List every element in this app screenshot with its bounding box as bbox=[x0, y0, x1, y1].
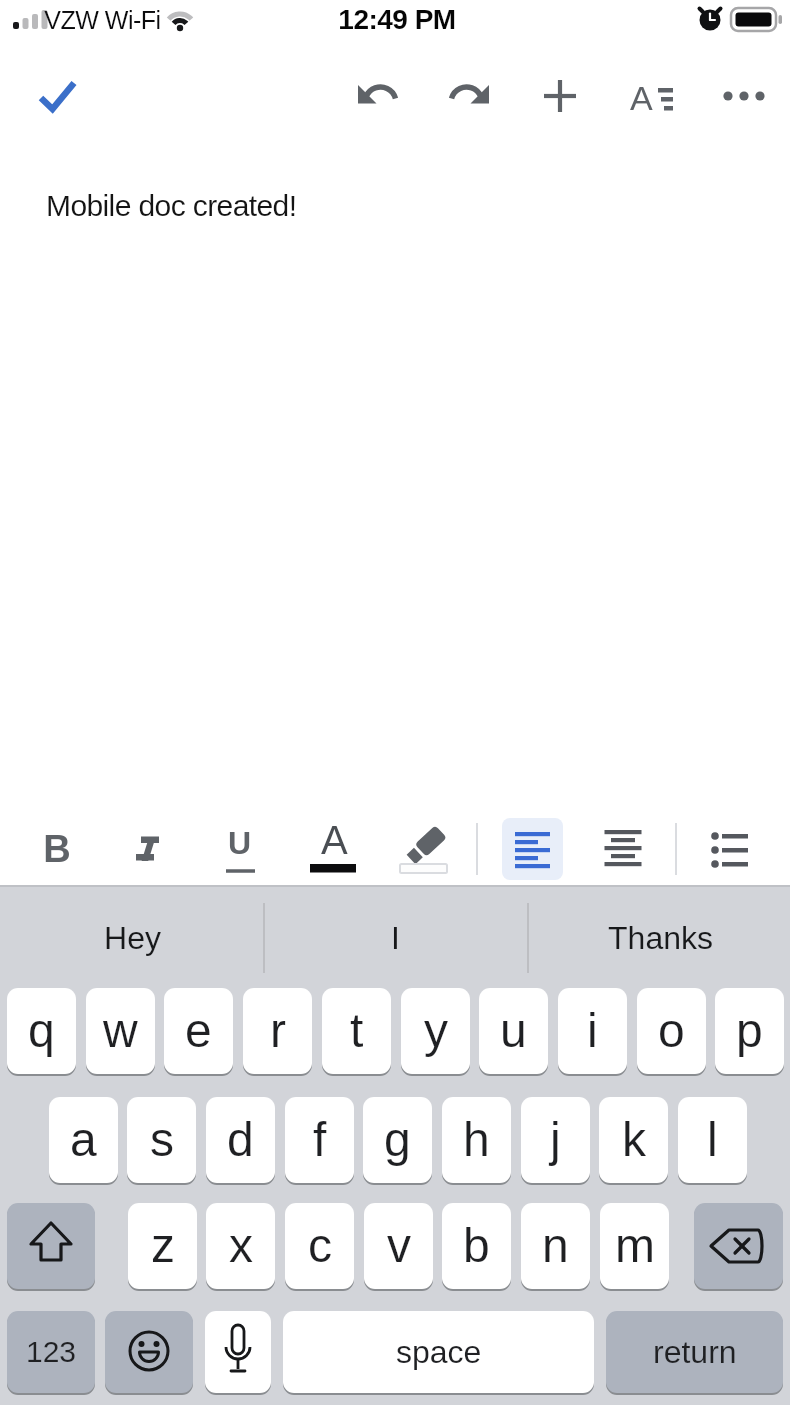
staticText: v bbox=[387, 1219, 411, 1273]
staticText: a bbox=[70, 1113, 97, 1167]
staticText: 123 bbox=[26, 1335, 77, 1369]
staticText: A bbox=[630, 79, 653, 117]
button[interactable]: z bbox=[128, 1203, 197, 1289]
staticText: space bbox=[396, 1334, 482, 1370]
button[interactable]: h bbox=[442, 1097, 511, 1183]
staticText: c bbox=[308, 1219, 332, 1273]
staticText: q bbox=[28, 1004, 55, 1058]
button[interactable]: f bbox=[285, 1097, 354, 1183]
staticText: Mobile doc created! bbox=[46, 189, 297, 223]
staticText: return bbox=[653, 1334, 737, 1370]
button[interactable]: U bbox=[212, 821, 268, 877]
staticText: z bbox=[151, 1219, 175, 1273]
button[interactable]: m bbox=[600, 1203, 669, 1289]
button[interactable] bbox=[354, 72, 402, 120]
staticText: n bbox=[542, 1219, 569, 1273]
staticText: U bbox=[228, 825, 252, 861]
button[interactable]: A bbox=[622, 72, 678, 120]
button[interactable]: x bbox=[206, 1203, 275, 1289]
staticText: y bbox=[424, 1004, 448, 1058]
button[interactable] bbox=[205, 1311, 271, 1393]
button[interactable]: B bbox=[29, 821, 85, 877]
staticText: h bbox=[463, 1113, 490, 1167]
staticText: g bbox=[384, 1113, 411, 1167]
button[interactable]: a bbox=[49, 1097, 118, 1183]
button[interactable]: g bbox=[363, 1097, 432, 1183]
button[interactable] bbox=[34, 72, 82, 120]
button[interactable]: y bbox=[401, 988, 470, 1074]
button[interactable]: space bbox=[283, 1311, 594, 1393]
button[interactable]: u bbox=[479, 988, 548, 1074]
button[interactable]: d bbox=[206, 1097, 275, 1183]
staticText: Hey bbox=[104, 920, 161, 956]
staticText: I bbox=[391, 920, 400, 956]
button[interactable]: e bbox=[164, 988, 233, 1074]
button[interactable]: l bbox=[678, 1097, 747, 1183]
button[interactable]: return bbox=[606, 1311, 783, 1393]
button[interactable]: I bbox=[283, 915, 507, 961]
button[interactable]: j bbox=[521, 1097, 590, 1183]
staticText: w bbox=[103, 1004, 138, 1058]
staticText: 12:49 PM bbox=[338, 4, 456, 35]
button[interactable]: p bbox=[715, 988, 784, 1074]
button[interactable] bbox=[694, 1203, 783, 1289]
button[interactable]: w bbox=[86, 988, 155, 1074]
button[interactable]: A bbox=[303, 818, 365, 878]
button[interactable]: Thanks bbox=[548, 915, 772, 961]
button[interactable]: s bbox=[127, 1097, 196, 1183]
button[interactable]: o bbox=[637, 988, 706, 1074]
staticText: l bbox=[707, 1113, 718, 1167]
button[interactable]: Hey bbox=[20, 915, 244, 961]
staticText: Thanks bbox=[608, 920, 713, 956]
staticText: A bbox=[321, 818, 348, 863]
staticText: e bbox=[185, 1004, 212, 1058]
button[interactable] bbox=[105, 1311, 193, 1393]
staticText: d bbox=[227, 1113, 254, 1167]
button[interactable] bbox=[536, 72, 584, 120]
staticText: o bbox=[658, 1004, 685, 1058]
button[interactable] bbox=[120, 821, 176, 877]
staticText: i bbox=[587, 1004, 598, 1058]
button[interactable]: c bbox=[285, 1203, 354, 1289]
staticText: VZW Wi-Fi bbox=[44, 6, 161, 34]
button[interactable] bbox=[720, 72, 768, 120]
button[interactable]: q bbox=[7, 988, 76, 1074]
button[interactable]: k bbox=[599, 1097, 668, 1183]
button[interactable] bbox=[699, 821, 755, 877]
staticText: j bbox=[550, 1113, 561, 1167]
staticText: p bbox=[736, 1004, 763, 1058]
button[interactable] bbox=[445, 72, 493, 120]
staticText: m bbox=[615, 1219, 655, 1273]
button[interactable]: t bbox=[322, 988, 391, 1074]
staticText: b bbox=[463, 1219, 490, 1273]
staticText: s bbox=[150, 1113, 174, 1167]
button[interactable]: b bbox=[442, 1203, 511, 1289]
button[interactable] bbox=[7, 1203, 95, 1289]
button[interactable]: v bbox=[364, 1203, 433, 1289]
button[interactable]: i bbox=[558, 988, 627, 1074]
staticText: t bbox=[350, 1004, 364, 1058]
staticText: u bbox=[500, 1004, 527, 1058]
staticText: r bbox=[270, 1004, 286, 1058]
button[interactable] bbox=[502, 818, 563, 880]
staticText: f bbox=[313, 1113, 327, 1167]
button[interactable] bbox=[396, 815, 456, 881]
button[interactable]: 123 bbox=[7, 1311, 95, 1393]
button[interactable]: n bbox=[521, 1203, 590, 1289]
staticText: B bbox=[43, 828, 71, 870]
button[interactable] bbox=[595, 821, 651, 877]
button[interactable]: r bbox=[243, 988, 312, 1074]
staticText: x bbox=[229, 1219, 253, 1273]
staticText: k bbox=[622, 1113, 646, 1167]
